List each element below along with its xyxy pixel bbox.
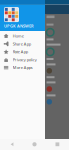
button[interactable]: Home — [23, 139, 46, 150]
button[interactable]: Home — [0, 32, 45, 40]
staticText: Rate App — [13, 49, 28, 54]
staticText: Share App — [13, 41, 31, 46]
button[interactable]: Rate App — [0, 48, 45, 56]
button[interactable]: Share App — [0, 40, 45, 48]
staticText: Privacy policy — [13, 57, 37, 62]
button[interactable]: More Apps — [0, 64, 45, 71]
staticText: More Apps — [13, 65, 33, 70]
staticText: UP GK ANSWER — [4, 23, 34, 29]
button[interactable]: Recent apps — [46, 139, 69, 150]
staticText: Home — [13, 33, 24, 39]
button[interactable]: Back — [0, 139, 23, 150]
button[interactable]: Privacy policy — [0, 56, 45, 64]
